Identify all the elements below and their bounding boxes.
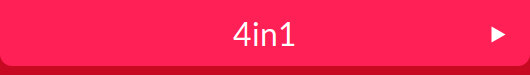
staticText: 4in1	[233, 14, 297, 53]
button[interactable]: 4in1	[233, 0, 297, 67]
button[interactable]: Play	[0, 0, 530, 75]
